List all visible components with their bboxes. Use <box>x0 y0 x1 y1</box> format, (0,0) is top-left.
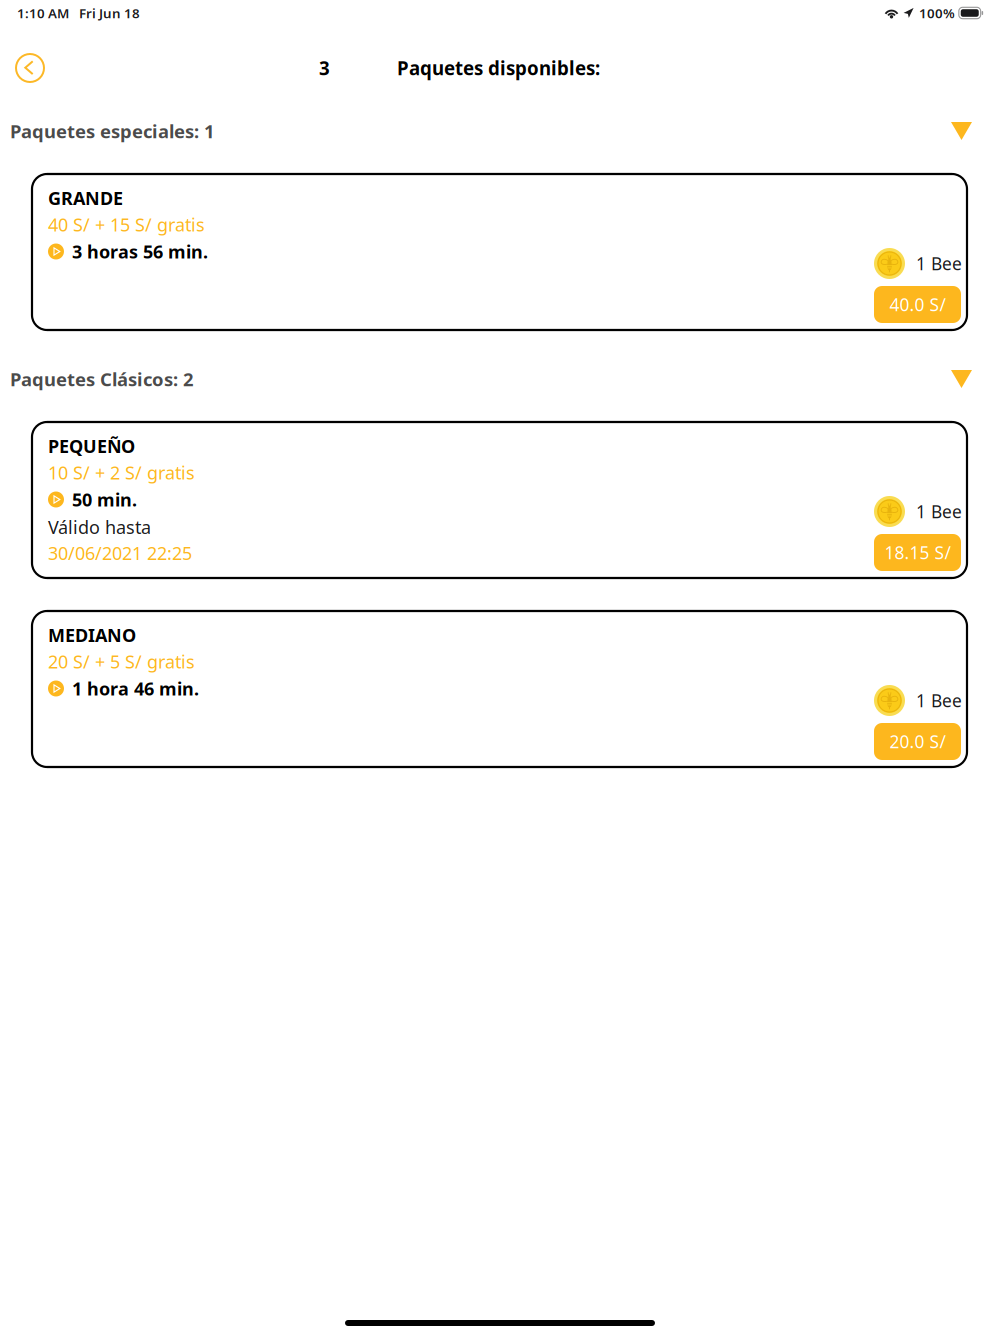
staticText: 1 hora 46 min. <box>72 676 199 701</box>
staticText: Paquetes disponibles: <box>397 55 600 81</box>
staticText: 20.0 S/ <box>889 730 945 753</box>
staticText: 1 Bee <box>916 252 962 275</box>
staticText: 3 horas 56 min. <box>72 239 208 264</box>
staticText: Paquetes especiales: 1 <box>10 118 215 144</box>
staticText: MEDIANO <box>48 623 136 647</box>
staticText: Paquetes Clásicos: 2 <box>10 366 194 392</box>
staticText: 18.15 S/ <box>884 541 950 564</box>
staticText: 1 Bee <box>916 689 962 712</box>
staticText: 10 S/ + 2 S/ gratis <box>48 460 195 485</box>
button[interactable]: GRANDE <box>32 174 967 330</box>
button[interactable]: Toggle Paquetes especiales: 1 <box>943 114 980 148</box>
staticText: 50 min. <box>72 487 137 512</box>
button[interactable]: PEQUEÑO <box>32 422 967 578</box>
staticText: 3 <box>319 55 330 81</box>
staticText: 1:10 AM <box>17 4 69 22</box>
staticText: 30/06/2021 22:25 <box>48 541 192 565</box>
button[interactable]: MEDIANO <box>32 611 967 767</box>
staticText: 100% <box>919 4 955 22</box>
button[interactable]: Toggle Paquetes Clásicos: 2 <box>943 362 980 396</box>
staticText: Fri Jun 18 <box>79 4 140 22</box>
staticText: 40.0 S/ <box>889 293 945 316</box>
staticText: 20 S/ + 5 S/ gratis <box>48 649 195 674</box>
staticText: 1 Bee <box>916 500 962 523</box>
staticText: PEQUEÑO <box>48 434 135 458</box>
staticText: Válido hasta <box>48 515 151 539</box>
staticText: 40 S/ + 15 S/ gratis <box>48 212 205 237</box>
staticText: GRANDE <box>48 186 123 210</box>
button[interactable]: Back <box>8 46 52 90</box>
